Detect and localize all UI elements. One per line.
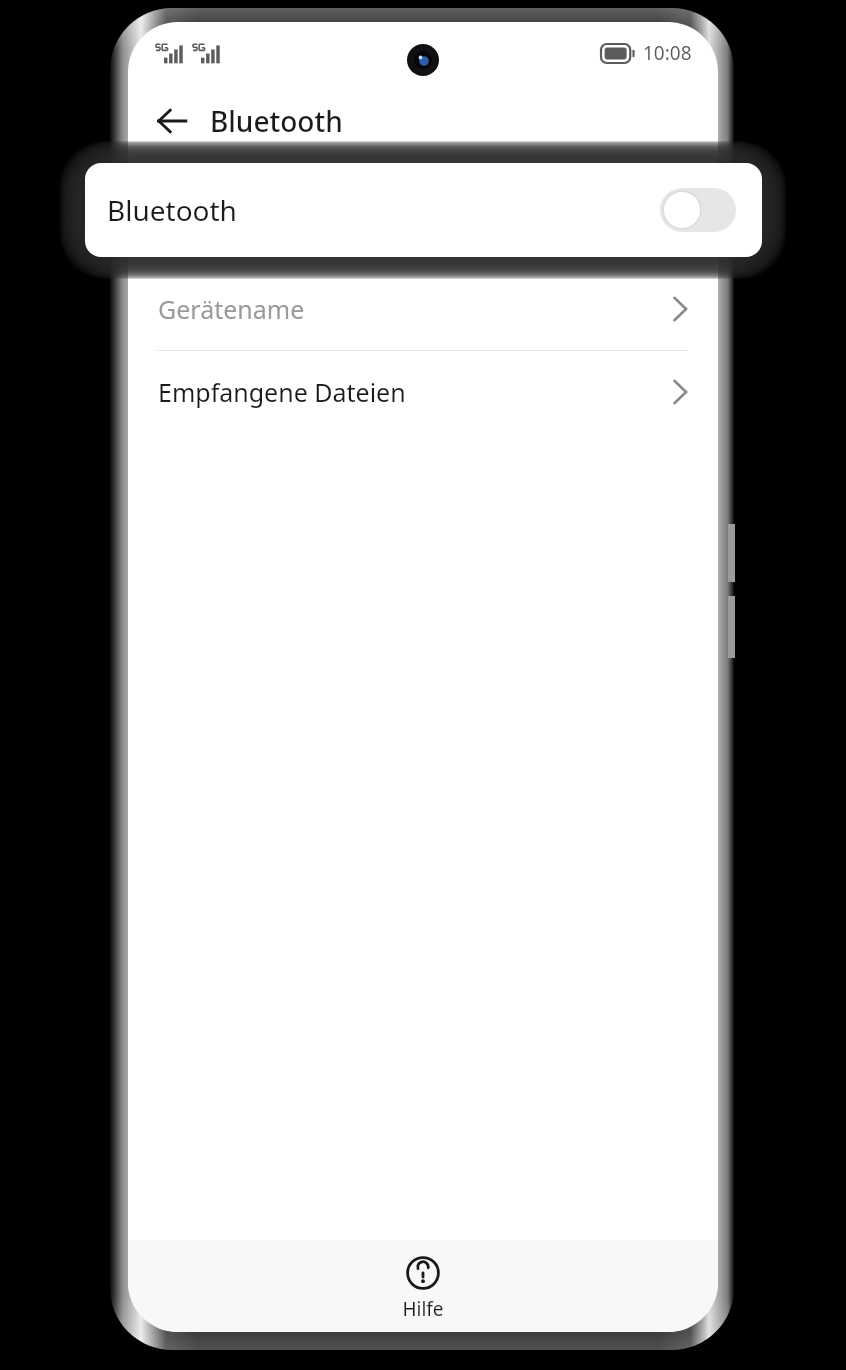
button[interactable]: Bluetooth [85,163,762,257]
button[interactable]: Hilfe [128,1240,718,1332]
staticText: Gerätename [158,292,305,326]
staticText: Bluetooth [107,191,237,229]
button[interactable]: Gerätename [128,268,718,350]
button[interactable]: Empfangene Dateien [128,351,718,433]
staticText: Hilfe [402,1296,444,1322]
button[interactable]: Back [146,95,198,147]
staticText: Bluetooth [210,102,343,140]
button[interactable]: Bluetooth toggle, off [660,188,736,232]
staticText: Empfangene Dateien [158,375,406,409]
staticText: 10:08 [643,40,692,66]
